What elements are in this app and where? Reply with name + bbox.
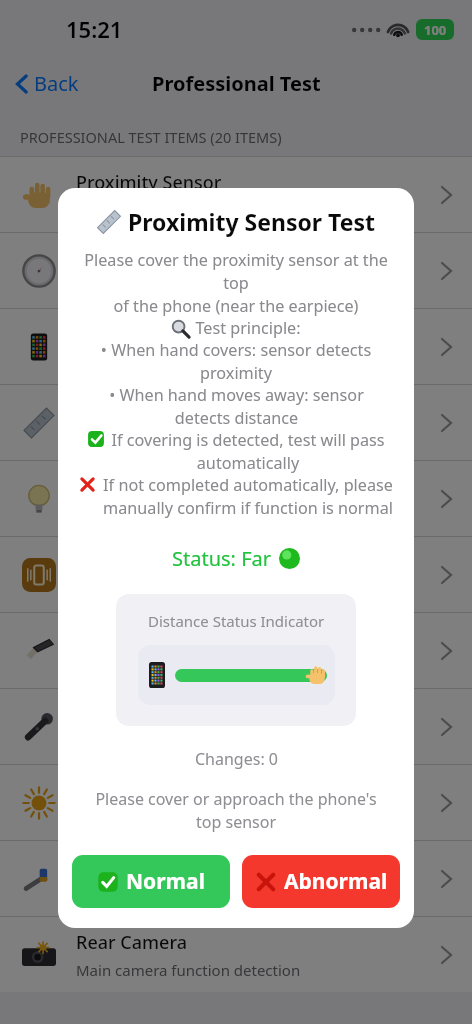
staticText: Touch response detection [76, 352, 258, 372]
staticText: Distance Status Indicator [148, 611, 325, 631]
button[interactable]: Compass [0, 232, 472, 308]
staticText: Abnormal [284, 867, 388, 896]
staticText: Changes: 0 [195, 748, 278, 770]
staticText: Main camera function detection [76, 960, 301, 980]
button[interactable]: Flashlight [0, 612, 472, 688]
button[interactable]: Ruler [0, 384, 472, 460]
staticText: Proximity Sensor Test [128, 206, 376, 237]
staticText: Microphone [76, 702, 180, 727]
button[interactable]: Microphone [0, 688, 472, 764]
button[interactable]: Abnormal [242, 855, 400, 908]
button[interactable]: Front Camera [0, 840, 472, 916]
staticText: If not completed automatically, please m… [103, 474, 393, 519]
staticText: Distance measurement [76, 428, 240, 448]
staticText: Ambient light detection [76, 504, 242, 524]
staticText: Proximity detection [76, 200, 213, 220]
staticText: Selfie camera function detection [76, 884, 304, 904]
staticText: Back [34, 70, 79, 97]
staticText: Compass [76, 246, 155, 271]
staticText: Brightness adjustment function detection [76, 808, 369, 828]
staticText: Proximity Sensor [76, 170, 222, 195]
staticText: Please cover or approach the phone's top… [95, 788, 377, 833]
staticText: Test principle: [195, 317, 301, 339]
button[interactable]: Vibration [0, 536, 472, 612]
staticText: Light Sensor [76, 474, 184, 499]
staticText: 15:21 [66, 14, 123, 44]
staticText: Vibration motor detection [76, 580, 259, 600]
button[interactable]: Brightness [0, 764, 472, 840]
staticText: Status: Far [172, 545, 271, 572]
staticText: 100 [424, 21, 447, 39]
button[interactable]: Normal [72, 855, 230, 908]
button[interactable]: Rear Camera [0, 916, 472, 992]
staticText: Touch Screen [76, 322, 190, 347]
button[interactable]: Back [12, 66, 83, 101]
button[interactable]: Touch Screen [0, 308, 472, 384]
staticText: Flashlight [76, 626, 160, 651]
staticText: Flashlight function detection [76, 656, 277, 676]
staticText: If covering is detected, test will pass … [111, 429, 385, 474]
staticText: Rear Camera [76, 930, 187, 955]
button[interactable]: Proximity Sensor [0, 156, 472, 232]
staticText: Magnetometer detection [76, 276, 253, 296]
staticText: Front Camera [76, 854, 194, 879]
staticText: PROFESSIONAL TEST ITEMS (20 ITEMS) [20, 127, 282, 147]
staticText: • When hand moves away: sensor detects d… [109, 384, 364, 429]
staticText: • When hand covers: sensor detects proxi… [72, 339, 400, 384]
staticText: Brightness [76, 778, 169, 803]
staticText: Professional Test [152, 70, 321, 97]
staticText: Normal [126, 867, 205, 896]
button[interactable]: Light Sensor [0, 460, 472, 536]
staticText: Please cover the proximity sensor at the… [72, 249, 400, 317]
